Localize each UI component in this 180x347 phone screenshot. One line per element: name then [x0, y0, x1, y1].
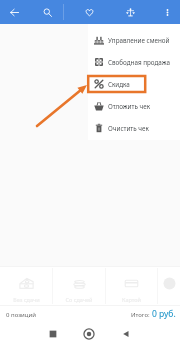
button[interactable]: Без сдачи [0, 267, 52, 305]
staticText: 0 позиций [6, 311, 36, 319]
staticText: Управление сменой [108, 36, 170, 45]
button[interactable]: More options [156, 1, 178, 23]
button[interactable]: Очистить чек [88, 117, 180, 139]
button[interactable]: Scales [119, 1, 141, 23]
button[interactable]: Картой [106, 267, 157, 305]
button[interactable]: Свободная продажа [88, 51, 180, 73]
staticText: Со сдачей [65, 296, 93, 303]
staticText: Скидка [108, 80, 130, 89]
staticText: Картой [122, 296, 141, 303]
button[interactable]: Recent apps [43, 324, 63, 344]
button[interactable]: Управление сменой [88, 29, 180, 51]
button[interactable]: Favorites [78, 1, 100, 23]
staticText: Итого: [131, 311, 150, 319]
button[interactable]: Back [116, 324, 136, 344]
button[interactable]: More payment options [158, 267, 180, 305]
staticText: Отложить чек [108, 102, 151, 111]
button[interactable]: Home [79, 324, 99, 344]
staticText: Без сдачи [13, 296, 40, 303]
button[interactable]: Search [36, 1, 58, 23]
button[interactable]: Со сдачей [53, 267, 105, 305]
staticText: 0 руб. [152, 308, 176, 320]
staticText: Свободная продажа [108, 58, 170, 67]
staticText: Очистить чек [108, 124, 149, 133]
button[interactable]: Отложить чек [88, 95, 180, 117]
button[interactable]: Скидка [88, 73, 180, 95]
button[interactable]: Back [3, 1, 25, 23]
